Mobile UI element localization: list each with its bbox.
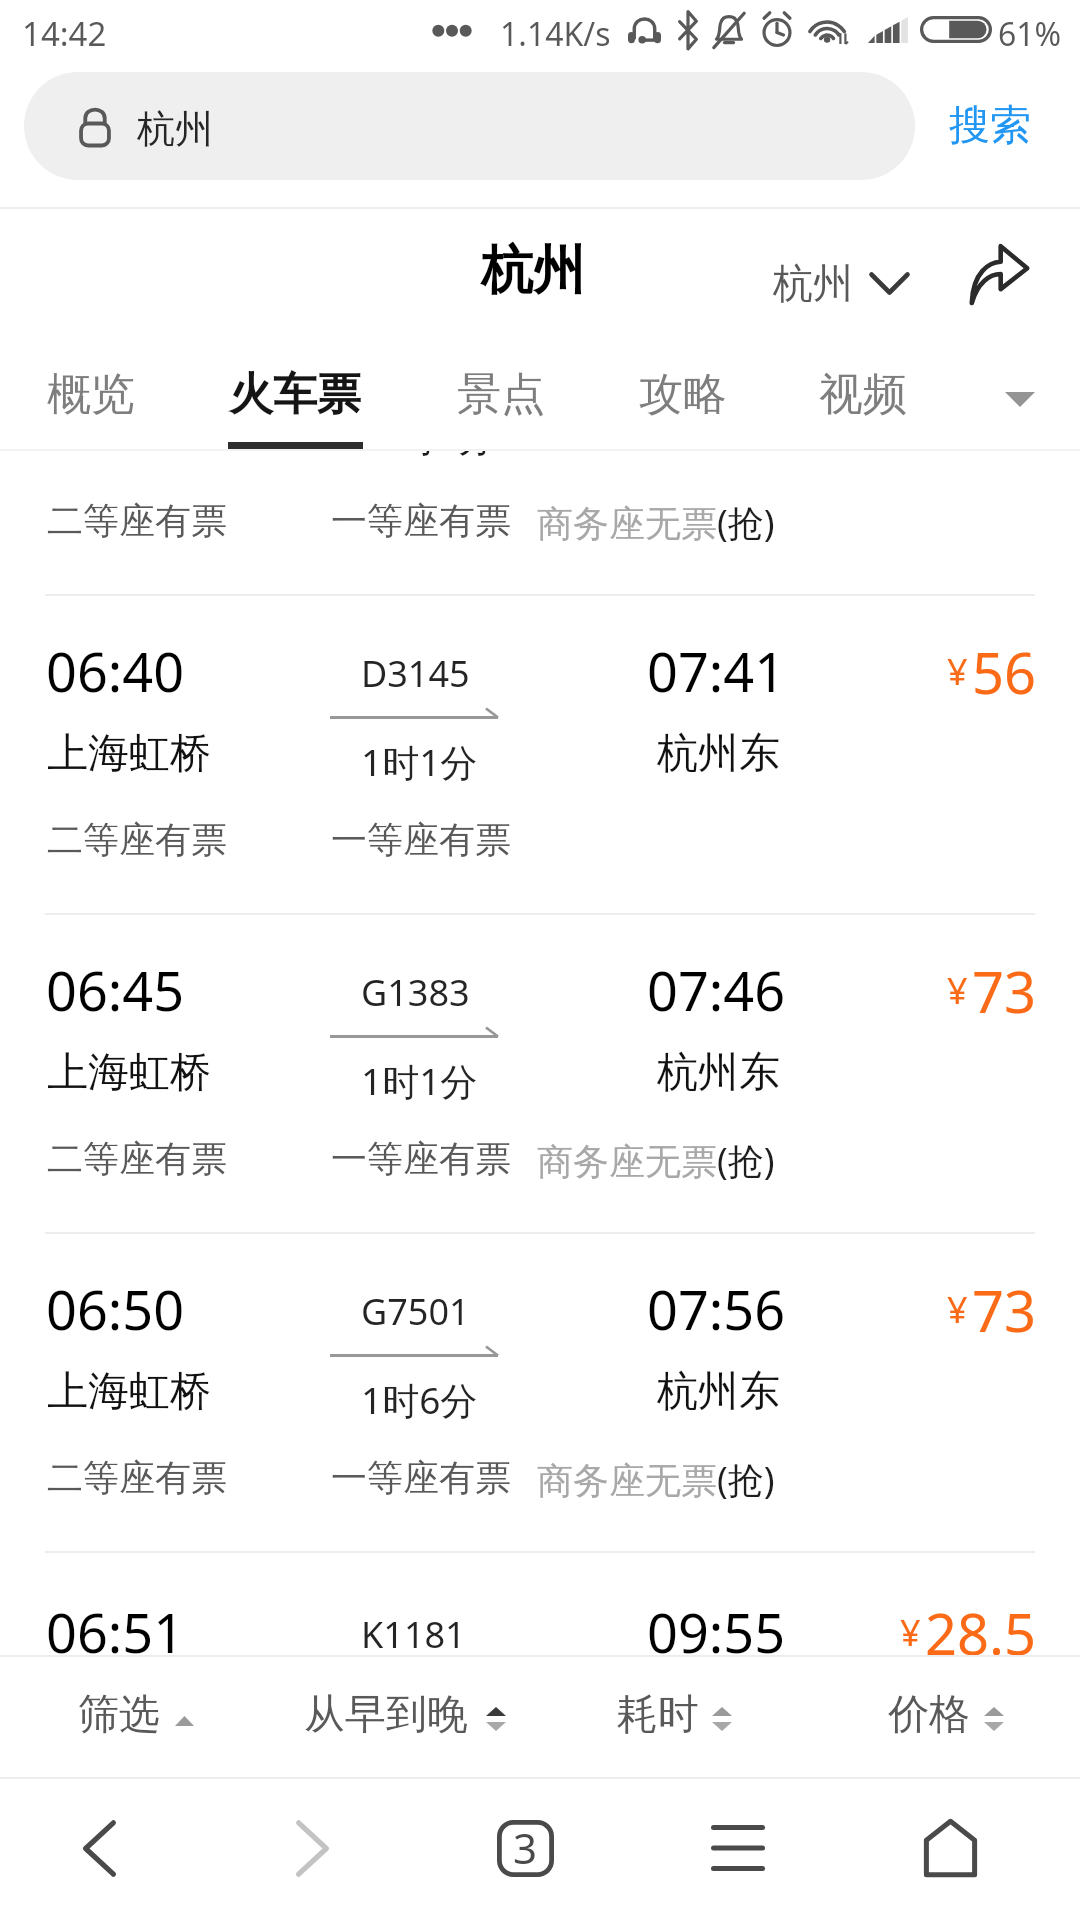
staticText: 耗时 — [617, 1689, 699, 1741]
button[interactable]: Tabs — [465, 1788, 585, 1908]
staticText: 73 — [972, 1272, 1037, 1348]
staticText: 1时1分 — [361, 736, 478, 787]
staticText: 07:41 — [647, 634, 786, 708]
staticText: 从早到晚 — [304, 1689, 468, 1741]
staticText: ¥ — [947, 1285, 968, 1334]
staticText: 商务座无票(抢) — [537, 1455, 775, 1504]
button[interactable]: 攻略 — [613, 348, 751, 448]
staticText: 1时6分 — [378, 411, 495, 461]
button[interactable]: 概览 — [21, 348, 159, 448]
staticText: 搜索 — [949, 100, 1031, 152]
button[interactable]: 搜索 — [930, 72, 1050, 180]
staticText: 杭州 — [137, 105, 213, 153]
button[interactable]: 杭州 — [756, 236, 926, 328]
button[interactable]: 从早到晚 — [270, 1655, 542, 1777]
staticText: 杭州东 — [657, 1047, 780, 1099]
staticText: G1383 — [361, 968, 470, 1017]
staticText: 价格 — [888, 1689, 970, 1741]
staticText: ¥ — [947, 647, 968, 696]
staticText: K1181 — [361, 1610, 466, 1655]
button[interactable]: 筛选 — [48, 1655, 228, 1777]
staticText: 上海虹桥 — [47, 728, 211, 780]
button[interactable]: 06:50 — [0, 1232, 1080, 1551]
button[interactable]: Home — [890, 1788, 1010, 1908]
staticText: ¥ — [947, 966, 968, 1015]
staticText: 筛选 — [78, 1689, 160, 1741]
staticText: 二等座有票 — [47, 498, 227, 543]
staticText: 攻略 — [639, 367, 727, 422]
staticText: 56 — [972, 634, 1037, 710]
button[interactable]: Share — [958, 233, 1040, 315]
staticText: 06:40 — [46, 634, 185, 708]
staticText: 一等座有票 — [331, 817, 511, 862]
button[interactable]: Forward — [252, 1788, 372, 1908]
staticText: 商务座无票(抢) — [537, 498, 775, 547]
staticText: 杭州 — [481, 238, 585, 304]
staticText: 一等座有票 — [331, 1455, 511, 1500]
staticText: 73 — [972, 953, 1037, 1029]
button[interactable]: Menu — [678, 1788, 798, 1908]
button[interactable]: 耗时 — [583, 1655, 768, 1777]
staticText: 09:55 — [647, 1595, 786, 1655]
staticText: G7501 — [361, 1287, 470, 1336]
staticText: 06:50 — [46, 1272, 185, 1346]
staticText: 火车票 — [229, 367, 361, 422]
staticText: 视频 — [819, 367, 907, 422]
staticText: 景点 — [457, 367, 545, 422]
staticText: ¥ — [900, 1608, 921, 1655]
staticText: 3 — [513, 1819, 538, 1876]
staticText: 一等座有票 — [331, 1136, 511, 1181]
button[interactable]: More tabs — [960, 348, 1070, 448]
staticText: 二等座有票 — [47, 1136, 227, 1181]
button[interactable]: 杭州 — [24, 72, 915, 180]
button[interactable]: 火车票 — [203, 348, 387, 448]
button[interactable]: 06:45 — [0, 913, 1080, 1232]
staticText: 1时1分 — [361, 1055, 478, 1106]
staticText: 杭州 — [773, 258, 853, 308]
staticText: 14:42 — [22, 11, 107, 56]
staticText: 1.14K/s — [500, 12, 611, 56]
staticText: D3145 — [361, 649, 470, 698]
button[interactable]: 价格 — [854, 1655, 1040, 1777]
staticText: 上海虹桥 — [47, 1366, 211, 1418]
button[interactable]: 视频 — [793, 348, 931, 448]
staticText: 二等座有票 — [47, 817, 227, 862]
button[interactable]: 06:40 — [0, 594, 1080, 913]
staticText: 一等座有票 — [331, 498, 511, 543]
staticText: 06:45 — [46, 953, 185, 1027]
staticText: 28.5 — [925, 1595, 1037, 1655]
staticText: 杭州东 — [657, 1366, 780, 1418]
staticText: 上海虹桥 — [47, 1047, 211, 1099]
staticText: 06:51 — [46, 1595, 185, 1655]
staticText: 杭州东 — [657, 728, 780, 780]
staticText: 商务座无票(抢) — [537, 1136, 775, 1185]
staticText: 07:46 — [647, 953, 786, 1027]
staticText: 1时6分 — [361, 1374, 478, 1425]
button[interactable]: 景点 — [431, 348, 569, 448]
staticText: 二等座有票 — [47, 1455, 227, 1500]
button[interactable]: Back — [39, 1788, 159, 1908]
staticText: 61% — [998, 12, 1062, 56]
staticText: 07:56 — [647, 1272, 786, 1346]
staticText: 概览 — [47, 367, 135, 422]
